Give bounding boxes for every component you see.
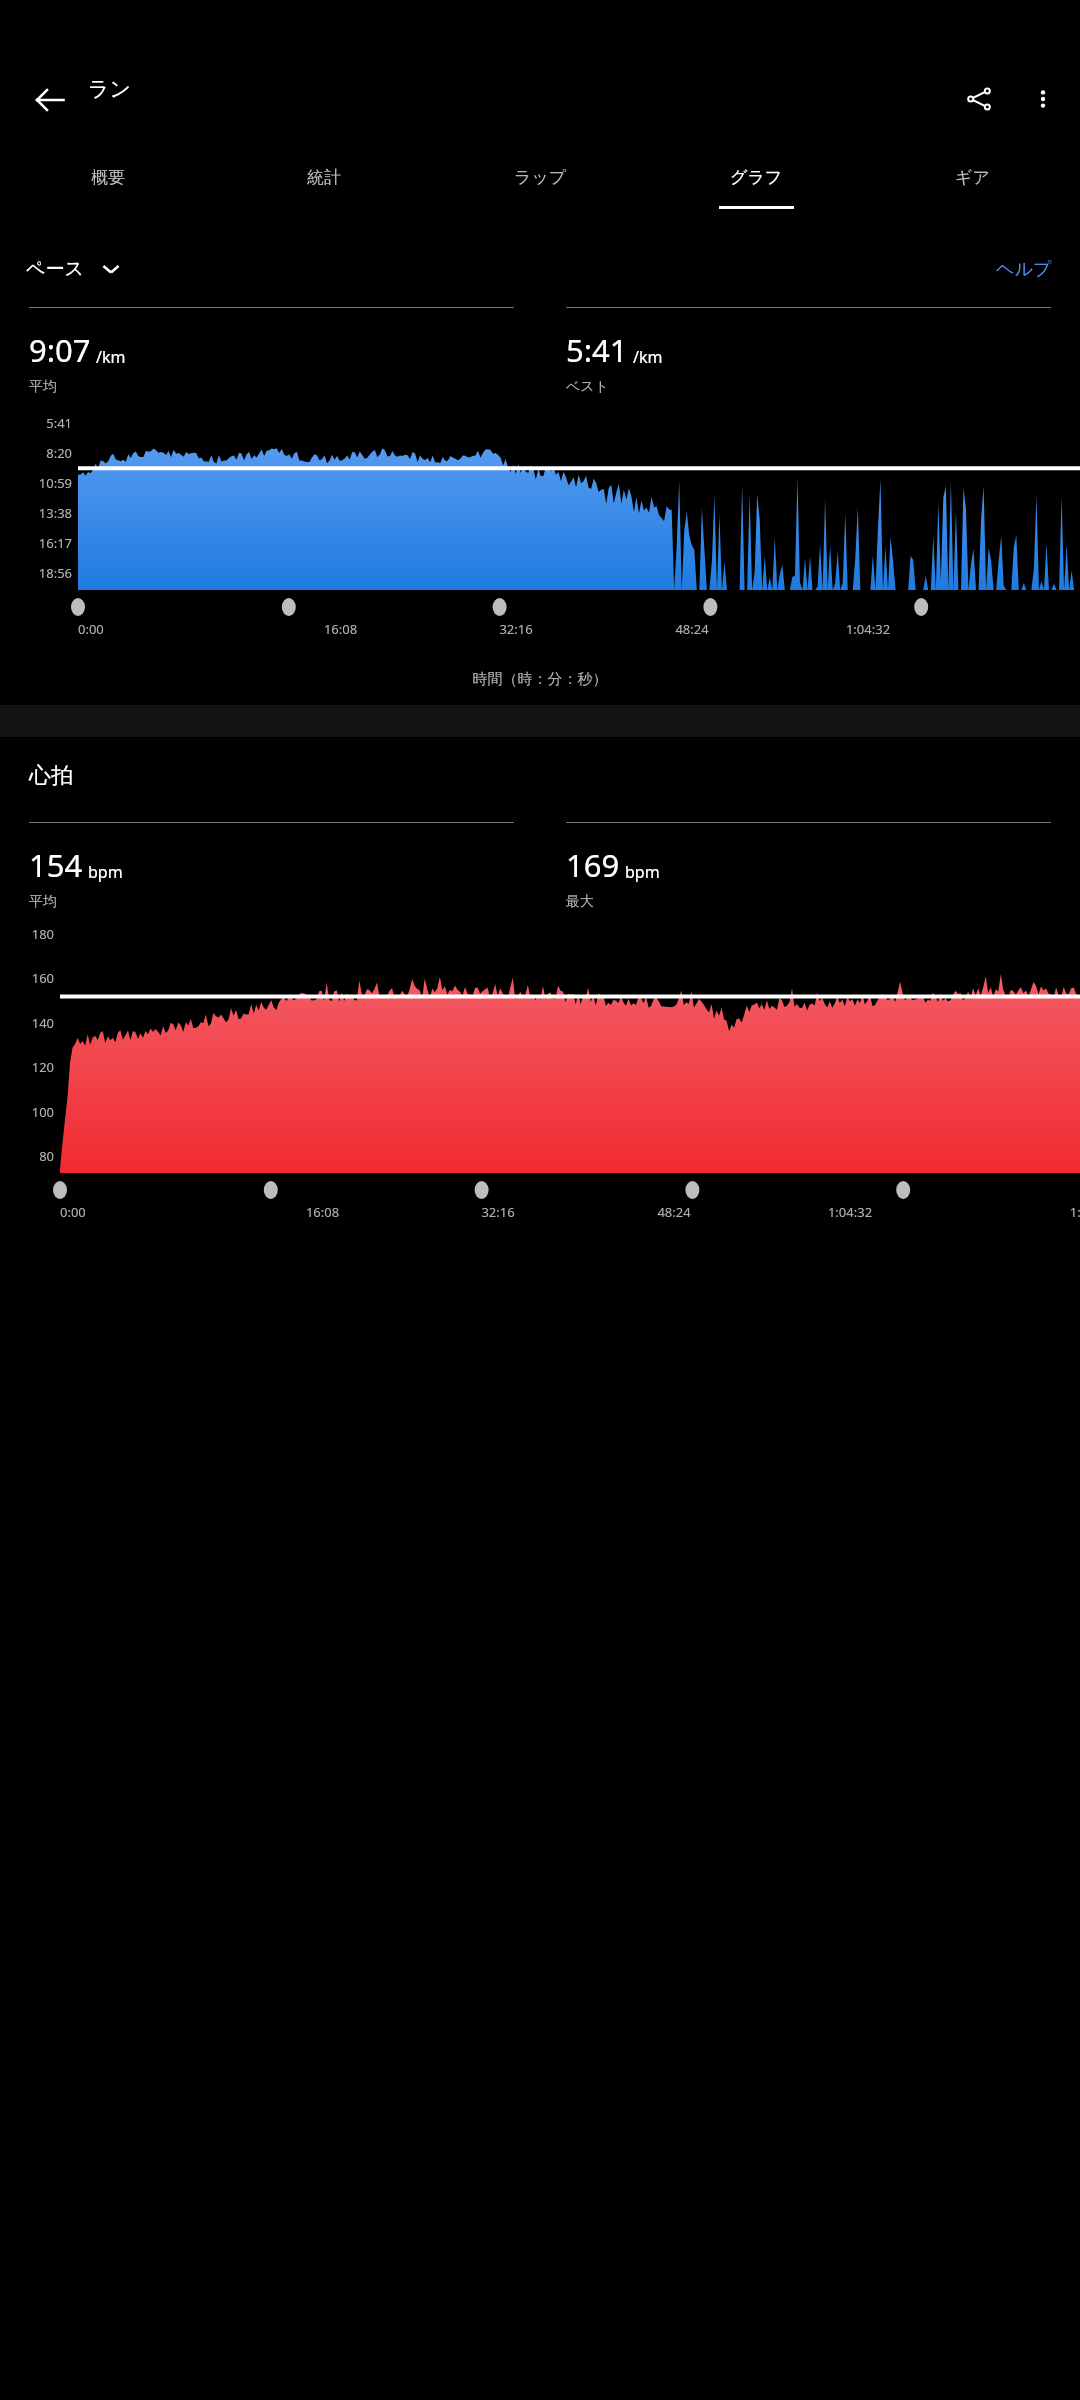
staticText: 80 <box>39 1147 54 1165</box>
staticText: ラン <box>88 76 131 102</box>
staticText: 1:04:32 <box>762 1203 938 1221</box>
staticText: 48:24 <box>604 620 780 638</box>
staticText: 154 <box>29 844 83 886</box>
button[interactable]: ペース <box>22 253 124 285</box>
button[interactable]: 概要 <box>0 150 216 225</box>
button[interactable]: グラフ <box>648 150 864 225</box>
button[interactable]: More options <box>1014 70 1072 128</box>
button[interactable]: ヘルプ <box>990 252 1058 287</box>
staticText: 120 <box>31 1058 54 1076</box>
staticText: /km <box>633 346 663 368</box>
staticText: 32:16 <box>428 620 604 638</box>
staticText: ギア <box>955 167 990 188</box>
staticText: 32:16 <box>410 1203 586 1221</box>
staticText: ヘルプ <box>996 258 1052 281</box>
staticText: 180 <box>31 925 54 943</box>
staticText: ペース <box>26 257 84 281</box>
button[interactable]: Share <box>950 70 1008 128</box>
staticText: ベスト <box>566 378 609 396</box>
staticText: bpm <box>625 861 660 883</box>
staticText: 13:38 <box>38 504 72 522</box>
button[interactable]: 統計 <box>216 150 432 225</box>
staticText: 48:24 <box>586 1203 762 1221</box>
staticText: 8:20 <box>46 444 72 462</box>
staticText: 最大 <box>566 893 594 911</box>
staticText: 概要 <box>91 167 125 188</box>
staticText: 10:59 <box>38 474 72 492</box>
staticText: /km <box>96 346 126 368</box>
staticText: 0:00 <box>78 620 253 638</box>
staticText: 169 <box>566 844 620 886</box>
staticText: 時間（時：分：秒） <box>0 670 1080 689</box>
staticText: bpm <box>88 861 123 883</box>
staticText: 平均 <box>29 893 57 911</box>
staticText: 平均 <box>29 378 57 396</box>
staticText: ラップ <box>514 167 567 188</box>
staticText: 1:04:32 <box>780 620 956 638</box>
staticText: 心拍 <box>29 762 73 790</box>
staticText: 16:08 <box>253 620 428 638</box>
staticText: 16:08 <box>235 1203 410 1221</box>
staticText: グラフ <box>730 167 783 188</box>
staticText: 16:17 <box>38 534 72 552</box>
staticText: 160 <box>31 969 54 987</box>
staticText: 統計 <box>307 167 341 188</box>
button[interactable]: Back <box>20 70 80 130</box>
staticText: 5:41 <box>566 329 628 371</box>
button[interactable]: ギア <box>864 150 1080 225</box>
staticText: 1:20:40 <box>938 1203 1080 1221</box>
staticText: 9:07 <box>29 329 91 371</box>
button[interactable]: ラップ <box>432 150 648 225</box>
staticText: 0:00 <box>60 1203 235 1221</box>
staticText: 5:41 <box>46 414 72 432</box>
staticText: 100 <box>31 1103 54 1121</box>
staticText: 140 <box>31 1014 54 1032</box>
staticText: 18:56 <box>38 564 72 582</box>
